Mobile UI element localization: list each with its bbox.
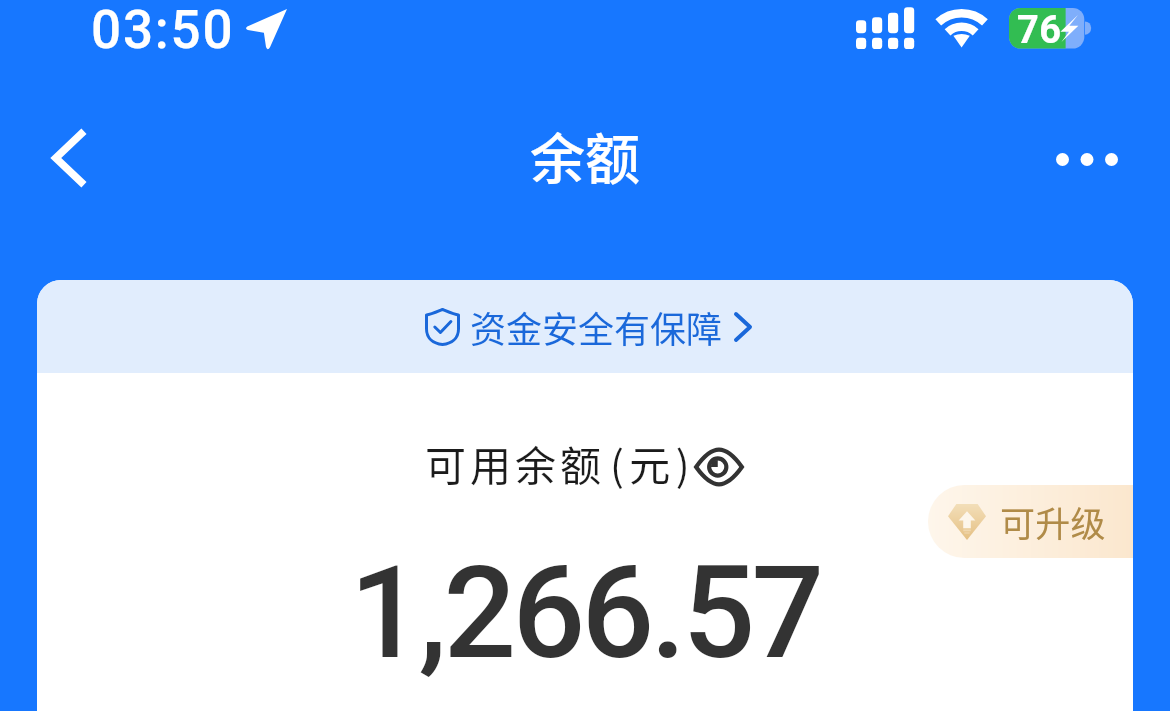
- staticText: 余额: [530, 115, 641, 195]
- button[interactable]: 可升级: [928, 485, 1133, 558]
- button[interactable]: Toggle balance visibility: [688, 439, 750, 495]
- staticText: 可升级: [1000, 496, 1106, 547]
- staticText: 可用余额: [425, 433, 605, 492]
- staticText: 1,266.57: [37, 538, 1133, 688]
- button[interactable]: 资金安全有保障: [37, 280, 1133, 373]
- staticText: 资金安全有保障: [470, 301, 723, 353]
- staticText: 03:50: [91, 0, 235, 61]
- button[interactable]: Back: [23, 114, 113, 202]
- staticText: (元): [610, 433, 696, 492]
- staticText: 76: [1017, 8, 1062, 53]
- button[interactable]: More options: [1042, 115, 1132, 203]
